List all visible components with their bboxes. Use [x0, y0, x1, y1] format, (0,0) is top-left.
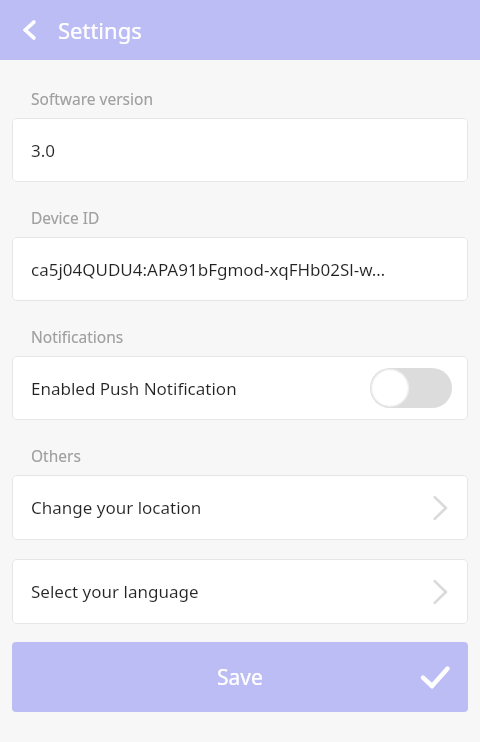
staticText: Notifications [31, 326, 124, 347]
button[interactable]: Change your location [12, 475, 468, 540]
staticText: ca5j04QUDU4:APA91bFgmod-xqFHb02Sl-w… [31, 258, 386, 281]
staticText: Change your location [31, 496, 202, 519]
staticText: Device ID [31, 207, 100, 228]
button[interactable]: Save [12, 642, 468, 712]
staticText: Save [217, 663, 263, 692]
button[interactable]: Enabled Push Notification [12, 356, 468, 420]
staticText: Settings [58, 15, 142, 45]
staticText: Software version [31, 88, 153, 109]
staticText: Select your language [31, 580, 199, 603]
staticText: Enabled Push Notification [31, 377, 237, 400]
button[interactable]: Select your language [12, 559, 468, 624]
staticText: Others [31, 445, 81, 466]
button[interactable]: Back [8, 8, 52, 52]
staticText: 3.0 [31, 139, 56, 162]
